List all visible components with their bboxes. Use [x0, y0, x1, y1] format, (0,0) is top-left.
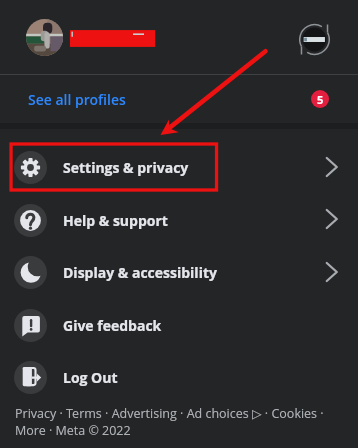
button[interactable]: Switch profile	[0, 0, 358, 74]
staticText: Display & accessibility	[63, 263, 217, 282]
staticText: Give feedback	[63, 316, 162, 335]
button[interactable]: Give feedback	[0, 299, 358, 351]
staticText: Privacy · Terms · Advertising · Ad choic…	[15, 405, 324, 422]
staticText: See all profiles	[28, 90, 126, 109]
staticText: 5	[317, 92, 324, 107]
button[interactable]: Switch profile	[294, 19, 334, 59]
button[interactable]: Display & accessibility	[0, 246, 358, 299]
staticText: More · Meta © 2022	[15, 422, 131, 439]
button[interactable]: Settings & privacy	[0, 141, 358, 194]
staticText: Settings & privacy	[63, 158, 189, 177]
button[interactable]: Help & support	[0, 194, 358, 246]
button[interactable]: See all profiles	[0, 75, 358, 123]
button[interactable]: Log Out	[0, 351, 358, 404]
staticText: Log Out	[63, 368, 118, 387]
staticText: Help & support	[63, 211, 168, 230]
